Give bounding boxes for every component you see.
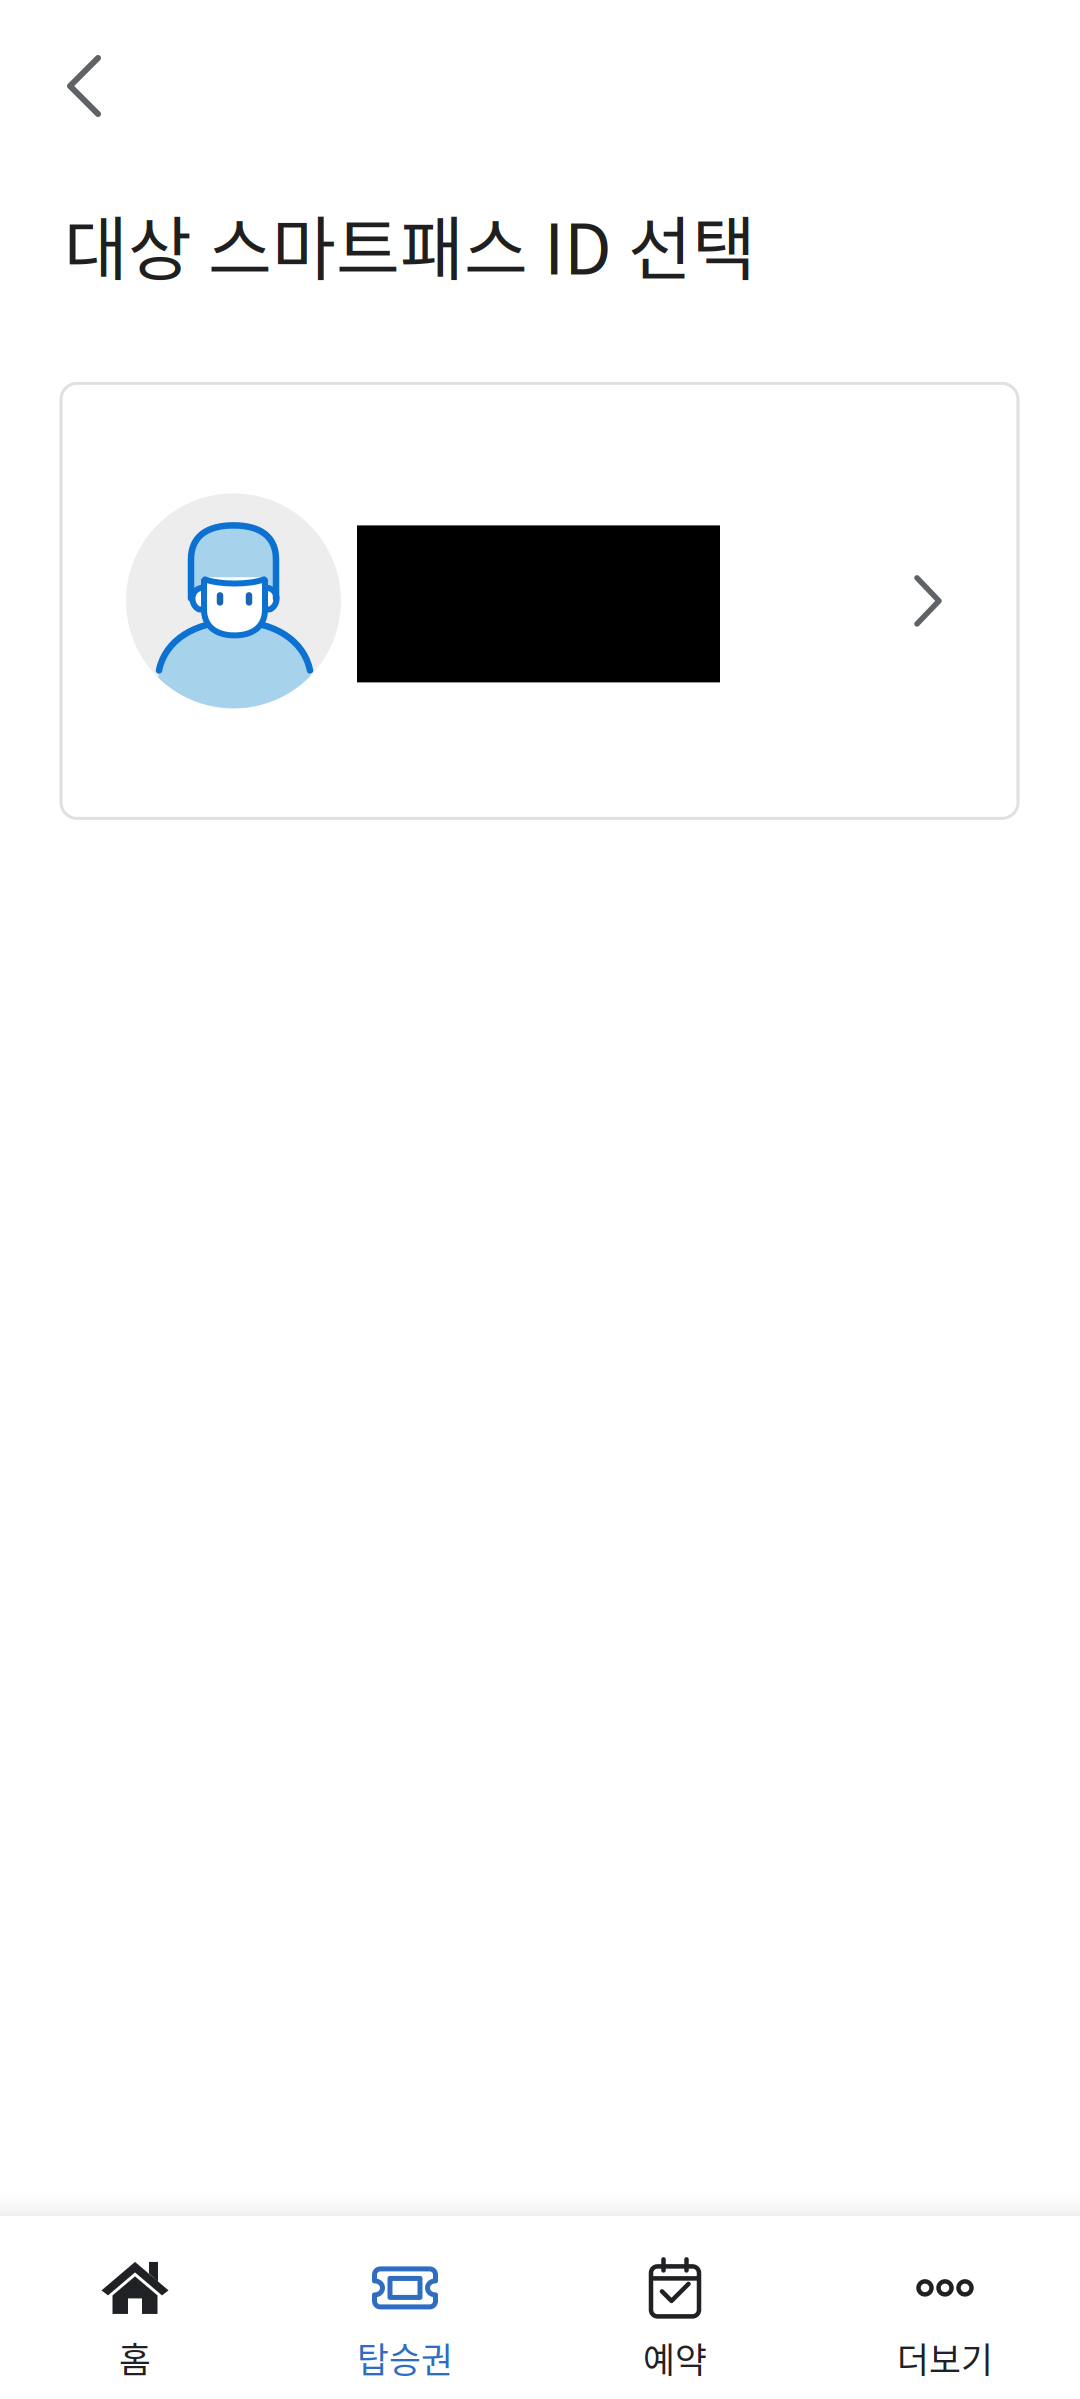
button[interactable]: Back [0,0,135,139]
staticText: 대상 스마트패스 ID 선택 [64,194,756,294]
staticText: 더보기 [897,2333,993,2383]
staticText: 홈 [119,2333,151,2383]
button[interactable]: 예약 [540,2212,810,2399]
button[interactable]: 스마트패스 ID 선택 [61,383,1018,818]
button[interactable]: 더보기 [810,2212,1080,2399]
button[interactable]: 탑승권 [270,2212,540,2399]
staticText: 예약 [643,2333,707,2383]
button[interactable]: 홈 [0,2212,270,2399]
staticText: 탑승권 [357,2333,453,2383]
